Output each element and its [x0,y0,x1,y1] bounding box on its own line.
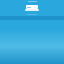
button[interactable]: Open tile [26,5,38,9]
other: Status [28,1,37,2]
button[interactable]: Details [25,9,39,11]
